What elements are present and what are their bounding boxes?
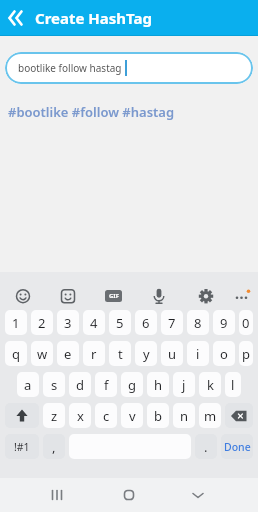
staticText: !#1 — [14, 440, 30, 454]
button[interactable]: 1 — [5, 310, 27, 335]
button[interactable]: u — [161, 341, 183, 366]
staticText: . — [204, 438, 208, 456]
staticText: o — [220, 345, 228, 363]
staticText: l — [231, 376, 235, 394]
staticText: , — [52, 438, 56, 456]
staticText: u — [168, 345, 177, 363]
button[interactable]: 7 — [161, 310, 183, 335]
staticText: b — [154, 407, 162, 425]
button[interactable]: s — [43, 372, 65, 397]
button[interactable]: 9 — [213, 310, 235, 335]
staticText: 8 — [194, 314, 202, 332]
staticText: 6 — [142, 314, 150, 332]
staticText: 9 — [220, 314, 228, 332]
staticText: n — [180, 407, 189, 425]
button[interactable]: 0 — [239, 310, 253, 335]
button[interactable]: Done — [221, 434, 253, 459]
button[interactable]: 4 — [83, 310, 105, 335]
staticText: 0 — [242, 314, 250, 332]
staticText: t — [118, 345, 123, 363]
staticText: v — [129, 407, 136, 425]
staticText: 4 — [90, 314, 98, 332]
button[interactable]: r — [83, 341, 105, 366]
staticText: q — [12, 345, 20, 363]
staticText: 3 — [64, 314, 72, 332]
button[interactable]: e — [57, 341, 79, 366]
staticText: GIF — [109, 292, 119, 300]
button[interactable]: p — [239, 341, 253, 366]
button[interactable]: j — [173, 372, 195, 397]
button[interactable]: . — [195, 434, 217, 459]
button[interactable] — [8, 8, 28, 28]
staticText: k — [207, 376, 214, 394]
staticText: #bootlike #follow #hastag — [8, 103, 175, 121]
button[interactable]: 2 — [31, 310, 53, 335]
staticText: bootlike follow hastag — [18, 61, 122, 75]
button[interactable] — [114, 480, 144, 510]
button[interactable]: !#1 — [5, 434, 39, 459]
button[interactable]: v — [121, 403, 143, 428]
button[interactable]: x — [69, 403, 91, 428]
button[interactable]: i — [187, 341, 209, 366]
button[interactable]: , — [43, 434, 65, 459]
staticText: h — [154, 376, 163, 394]
staticText: Create HashTag — [35, 8, 153, 28]
button[interactable] — [183, 480, 213, 510]
button[interactable]: l — [225, 372, 241, 397]
staticText: c — [103, 407, 110, 425]
button[interactable]: m — [199, 403, 221, 428]
staticText: Done — [224, 440, 251, 454]
staticText: 5 — [116, 314, 124, 332]
button[interactable]: b — [147, 403, 169, 428]
button[interactable] — [42, 480, 72, 510]
button[interactable]: z — [43, 403, 65, 428]
staticText: i — [196, 345, 200, 363]
staticText: e — [64, 345, 72, 363]
staticText: 1 — [12, 314, 20, 332]
staticText: y — [143, 345, 150, 363]
button[interactable]: bootlike follow hastag — [5, 52, 253, 84]
button[interactable]: c — [95, 403, 117, 428]
button[interactable]: 8 — [187, 310, 209, 335]
staticText: f — [104, 376, 109, 394]
staticText: w — [37, 345, 48, 363]
button[interactable]: g — [121, 372, 143, 397]
staticText: g — [128, 376, 136, 394]
button[interactable]: 5 — [109, 310, 131, 335]
button[interactable]: n — [173, 403, 195, 428]
staticText: d — [76, 376, 84, 394]
button[interactable]: t — [109, 341, 131, 366]
staticText: 2 — [38, 314, 46, 332]
staticText: m — [204, 407, 217, 425]
staticText: r — [91, 345, 97, 363]
button[interactable]: d — [69, 372, 91, 397]
staticText: p — [242, 345, 250, 363]
staticText: 7 — [168, 314, 176, 332]
button[interactable]: GIF — [105, 290, 122, 302]
button[interactable]: f — [95, 372, 117, 397]
button[interactable]: a — [17, 372, 39, 397]
staticText: x — [77, 407, 84, 425]
button[interactable]: 6 — [135, 310, 157, 335]
button[interactable]: h — [147, 372, 169, 397]
button[interactable]: o — [213, 341, 235, 366]
button[interactable]: y — [135, 341, 157, 366]
button[interactable]: q — [5, 341, 27, 366]
staticText: a — [24, 376, 32, 394]
button[interactable]: w — [31, 341, 53, 366]
button[interactable] — [225, 403, 253, 428]
staticText: s — [51, 376, 58, 394]
staticText: j — [182, 376, 186, 394]
button[interactable]: k — [199, 372, 221, 397]
staticText: z — [51, 407, 58, 425]
button[interactable] — [5, 403, 39, 428]
button[interactable]: 3 — [57, 310, 79, 335]
